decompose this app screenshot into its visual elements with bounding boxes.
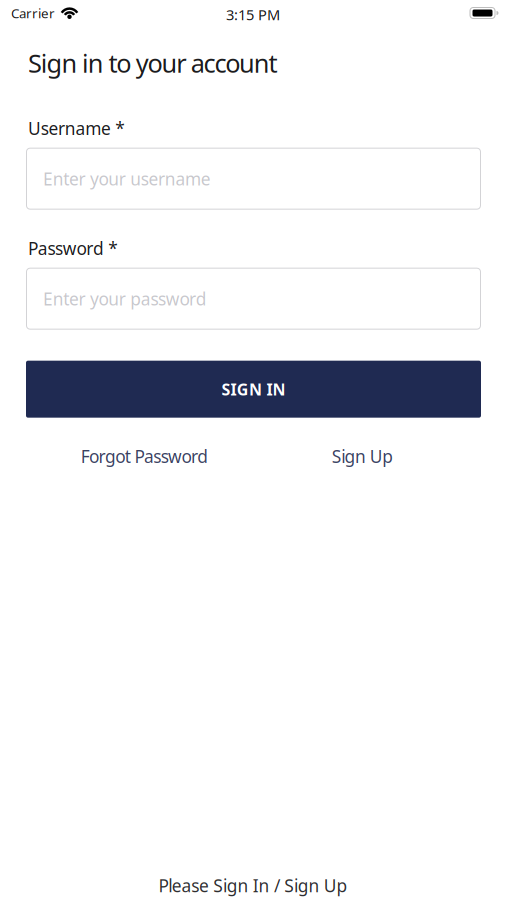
staticText: Password * xyxy=(28,237,118,260)
button[interactable]: Sign Up xyxy=(249,445,476,468)
button[interactable]: Enter your username xyxy=(26,148,481,210)
staticText: Sign Up xyxy=(332,445,393,468)
staticText: Sign in to your account xyxy=(28,46,278,80)
button[interactable]: Enter your password xyxy=(26,268,481,330)
staticText: Enter your password xyxy=(43,287,207,310)
staticText: Username * xyxy=(28,117,125,140)
staticText: Enter your username xyxy=(43,167,211,190)
staticText: SIGN IN xyxy=(221,379,286,400)
staticText: Please Sign In / Sign Up xyxy=(158,874,347,897)
staticText: Forgot Password xyxy=(81,445,208,468)
staticText: Carrier xyxy=(11,4,55,22)
button[interactable]: SIGN IN xyxy=(26,361,481,418)
button[interactable]: Forgot Password xyxy=(31,445,258,468)
staticText: 3:15 PM xyxy=(226,5,280,24)
